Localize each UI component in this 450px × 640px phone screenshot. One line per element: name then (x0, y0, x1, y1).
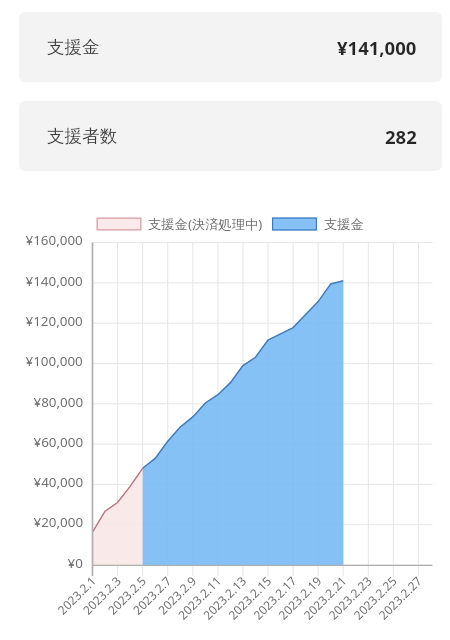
staticText: 支援者数 (47, 125, 117, 147)
staticText: ¥141,000 (337, 35, 417, 60)
staticText: 支援金 (47, 36, 100, 58)
button[interactable]: 支援者数 (19, 101, 442, 171)
button[interactable]: 支援金 (19, 12, 442, 82)
staticText: 282 (385, 124, 417, 149)
